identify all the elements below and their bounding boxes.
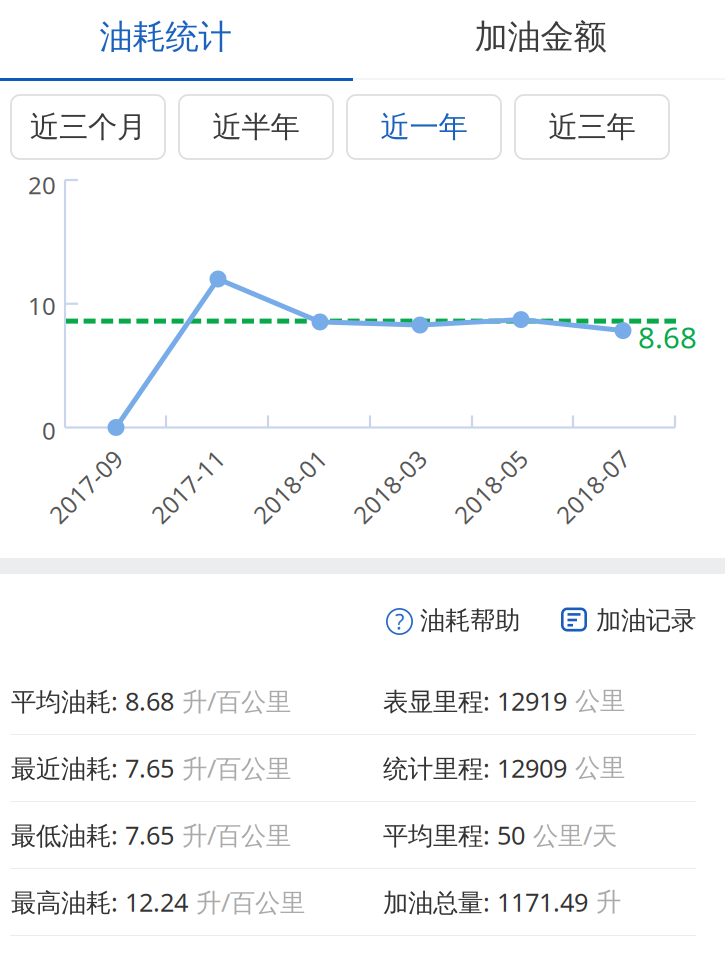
staticText: 加油记录 — [596, 605, 696, 636]
staticText: 1171.49 — [497, 885, 588, 919]
staticText: 最近油耗: — [11, 751, 125, 785]
staticText: 0 — [42, 415, 56, 446]
staticText: 近三年 — [548, 109, 635, 145]
staticText: 油耗统计 — [99, 16, 231, 57]
staticText: ? — [395, 607, 404, 636]
staticText: 升/百公里 — [174, 684, 291, 718]
staticText: 升/百公里 — [188, 885, 305, 919]
staticText: 升 — [588, 886, 621, 917]
staticText: 加油金额 — [474, 16, 606, 57]
button[interactable]: 近三个月 — [11, 95, 165, 159]
staticText: 近三个月 — [30, 109, 146, 145]
staticText: 升/百公里 — [174, 818, 291, 852]
staticText: 平均里程: — [383, 818, 497, 852]
staticText: 加油总量: — [383, 885, 497, 919]
button[interactable]: 加油金额 — [356, 0, 725, 74]
staticText: 2017-11 — [142, 471, 234, 502]
staticText: 最高油耗: — [11, 885, 125, 919]
staticText: 公里/天 — [525, 818, 617, 852]
staticText: 2018-01 — [244, 471, 336, 502]
button[interactable]: 近一年 — [347, 95, 501, 159]
staticText: 50 — [497, 818, 525, 852]
staticText: 近半年 — [212, 109, 299, 145]
button[interactable]: 近三年 — [515, 95, 669, 159]
staticText: 12.24 — [125, 885, 188, 919]
staticText: 8.68 — [638, 318, 697, 357]
button[interactable]: 近半年 — [179, 95, 333, 159]
staticText: 公里 — [567, 685, 625, 716]
staticText: 公里 — [567, 752, 625, 783]
staticText: 2018-03 — [344, 471, 436, 502]
staticText: 统计里程: — [383, 751, 497, 785]
staticText: 油耗帮助 — [420, 605, 520, 636]
staticText: 表显里程: — [383, 684, 497, 718]
staticText: 升/百公里 — [174, 751, 291, 785]
staticText: 10 — [28, 290, 56, 322]
button[interactable]: ? — [386, 599, 518, 645]
button[interactable]: 加油记录 — [561, 599, 694, 645]
staticText: 7.65 — [125, 751, 174, 785]
staticText: 2017-09 — [40, 471, 132, 502]
staticText: 12919 — [497, 684, 567, 718]
staticText: 最低油耗: — [11, 818, 125, 852]
staticText: 8.68 — [125, 684, 174, 718]
staticText: 12909 — [497, 751, 567, 785]
staticText: 2018-05 — [445, 471, 537, 502]
staticText: 20 — [28, 169, 56, 201]
staticText: 2018-07 — [547, 471, 639, 502]
button[interactable]: 油耗统计 — [0, 0, 331, 74]
staticText: 7.65 — [125, 818, 174, 852]
staticText: 近一年 — [380, 109, 467, 145]
staticText: 平均油耗: — [11, 684, 125, 718]
